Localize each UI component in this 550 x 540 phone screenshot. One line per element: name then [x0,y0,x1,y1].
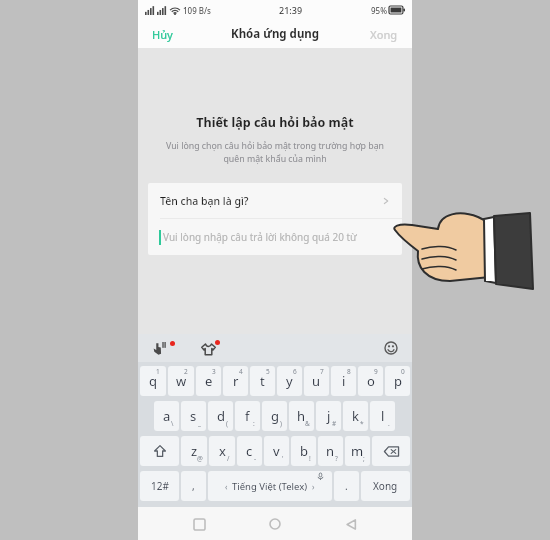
button[interactable]: a [154,401,179,431]
button[interactable]: f [235,401,260,431]
staticText: , [192,479,195,493]
staticText: q [149,372,157,390]
staticText: › [312,481,315,492]
button[interactable]: s [181,401,206,431]
staticText: e [205,372,213,390]
staticText: 0 [401,367,405,376]
staticText: y [286,372,293,390]
staticText: n [326,442,335,460]
button[interactable]: x [209,436,235,466]
button[interactable]: q [140,366,166,396]
staticText: u [312,372,321,390]
staticText: i [342,372,346,390]
button[interactable]: n [318,436,343,466]
staticText: v [273,442,280,460]
button[interactable]: Recent apps [184,509,214,539]
button[interactable]: k [343,401,368,431]
button[interactable]: Xong [362,23,406,46]
button[interactable]: Shift [140,436,179,466]
button[interactable]: l [370,401,395,431]
staticText: Khóa ứng dụng [231,26,320,42]
button[interactable]: Vui lòng nhập câu trả lời không quá 20 t… [148,219,402,255]
staticText: o [367,372,375,390]
staticText: d [217,407,225,425]
button[interactable]: e [196,366,221,396]
button[interactable]: , [181,471,206,501]
button[interactable]: v [264,436,289,466]
button[interactable]: b [291,436,316,466]
button[interactable]: t [250,366,275,396]
staticText: 8 [347,367,351,376]
staticText: 1 [156,367,160,376]
staticText: & [305,419,310,428]
staticText: 5 [266,367,270,376]
staticText: x [219,442,226,460]
staticText: f [245,407,250,425]
button[interactable]: g [262,401,287,431]
staticText: a [163,407,171,425]
staticText: 9 [374,367,378,376]
staticText: 2 [184,367,188,376]
staticText: c [246,442,253,460]
button[interactable]: Handwriting input [148,337,170,359]
staticText: 95% [371,5,387,16]
button[interactable]: u [304,366,329,396]
button[interactable]: p [385,366,410,396]
staticText: \ [171,419,174,428]
staticText: ' [282,454,284,463]
staticText: 3 [212,367,216,376]
button[interactable]: d [208,401,233,431]
staticText: 109 B/s [183,5,212,16]
staticText: # [332,419,337,428]
staticText: . [345,479,348,493]
staticText: / [227,454,230,463]
staticText: b [300,442,308,460]
staticText: 7 [320,367,324,376]
button[interactable]: Tên cha bạn là gì? [148,183,402,218]
staticText: * [360,419,364,428]
button[interactable]: c [237,436,262,466]
button[interactable]: w [168,366,194,396]
staticText: Tiếng Việt (Telex) [232,480,308,493]
staticText: ( [226,419,228,428]
staticText: k [352,407,359,425]
button[interactable]: Keyboard theme [197,337,219,359]
button[interactable]: Xong [361,471,410,501]
staticText: Hủy [152,27,173,42]
button[interactable]: i [331,366,356,396]
button[interactable]: z [181,436,207,466]
button[interactable]: Home [260,509,290,539]
staticText: h [297,407,306,425]
staticText: Xong [373,479,398,493]
staticText: 12# [151,479,169,493]
button[interactable]: Backspace [372,436,410,466]
button[interactable]: y [277,366,302,396]
staticText: : [253,419,255,428]
staticText: 21:39 [279,4,303,16]
staticText: g [271,407,279,425]
staticText: @ [197,454,203,463]
button[interactable]: o [358,366,383,396]
staticText: p [394,372,402,390]
staticText: Xong [370,27,398,42]
button[interactable]: Back [336,509,366,539]
staticText: ? [335,454,338,463]
button[interactable]: m [345,436,370,466]
button[interactable]: r [223,366,248,396]
button[interactable]: 12# [140,471,179,501]
staticText: 6 [293,367,297,376]
staticText: 4 [239,367,243,376]
staticText: Vui lòng nhập câu trả lời không quá 20 t… [163,230,357,244]
button[interactable]: Emoji [380,337,402,359]
staticText: Thiết lập câu hỏi bảo mật [196,114,354,131]
staticText: ‹ [225,481,228,492]
staticText: . [388,419,390,428]
staticText: ) [280,419,282,428]
button[interactable]: h [289,401,314,431]
staticText: ! [309,454,311,463]
button[interactable]: . [334,471,359,501]
button[interactable]: ‹ [208,471,332,501]
button[interactable]: j [316,401,341,431]
button[interactable]: Hủy [144,23,181,46]
staticText: t [260,372,265,390]
